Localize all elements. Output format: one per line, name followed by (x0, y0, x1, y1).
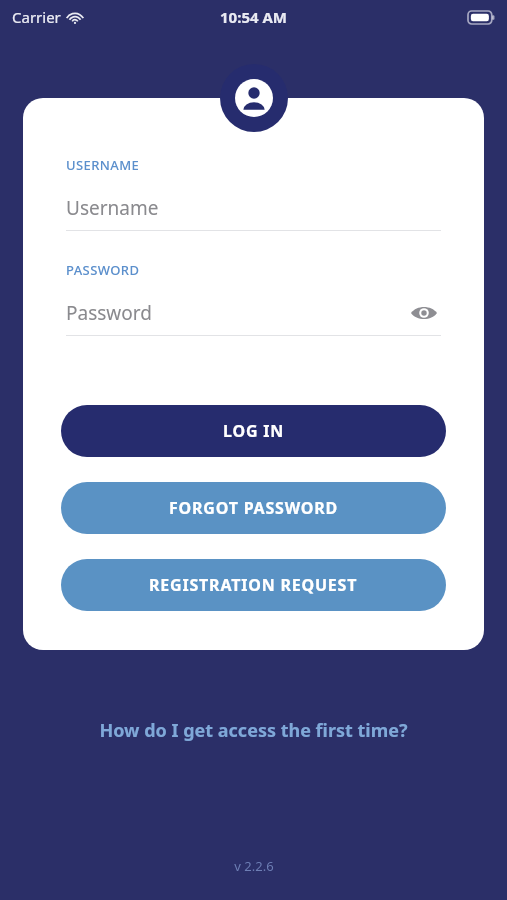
staticText: Username (66, 195, 159, 221)
button[interactable]: REGISTRATION REQUEST (61, 559, 446, 611)
button[interactable]: LOG IN (61, 405, 446, 457)
staticText: Carrier (12, 7, 61, 27)
staticText: v 2.2.6 (234, 857, 274, 875)
staticText: PASSWORD (66, 261, 140, 279)
staticText: FORGOT PASSWORD (169, 497, 339, 519)
button[interactable]: FORGOT PASSWORD (61, 482, 446, 534)
button[interactable]: Account (220, 64, 288, 132)
staticText: Password (66, 300, 152, 326)
staticText: How do I get access the first time? (99, 718, 408, 743)
button[interactable]: Show password (407, 298, 441, 328)
button[interactable]: Username (66, 193, 441, 223)
staticText: REGISTRATION REQUEST (149, 574, 358, 596)
button[interactable]: Password (66, 298, 441, 328)
staticText: USERNAME (66, 156, 140, 174)
button[interactable]: How do I get access the first time? (81, 712, 426, 749)
staticText: LOG IN (223, 420, 285, 442)
staticText: 10:54 AM (220, 7, 287, 27)
